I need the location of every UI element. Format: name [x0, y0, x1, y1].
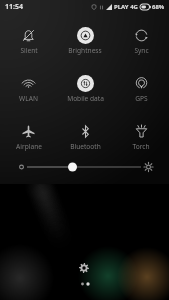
button[interactable]: Bluetooth: [57, 110, 113, 158]
button[interactable]: Airplane: [0, 110, 57, 158]
staticText: 68%: [152, 3, 165, 11]
button[interactable]: Sync: [113, 14, 169, 62]
staticText: Bluetooth: [70, 142, 101, 151]
staticText: Airplane: [16, 142, 42, 151]
button[interactable]: Brightness slider: [0, 158, 169, 184]
button[interactable]: Mobile data: [57, 62, 113, 110]
staticText: Sync: [134, 46, 149, 55]
button[interactable]: Brightness: [57, 14, 113, 62]
staticText: 11:54: [5, 2, 23, 12]
staticText: Mobile data: [67, 94, 104, 103]
button[interactable]: Settings: [76, 260, 92, 276]
staticText: Silent: [20, 46, 38, 55]
button[interactable]: GPS: [113, 62, 169, 110]
staticText: GPS: [135, 94, 148, 103]
button[interactable]: Torch: [113, 110, 169, 158]
staticText: Brightness: [68, 46, 102, 55]
staticText: PLAY 4G: [114, 3, 138, 11]
button[interactable]: WLAN: [0, 62, 57, 110]
button[interactable]: Silent: [0, 14, 57, 62]
staticText: Torch: [132, 142, 150, 151]
staticText: WLAN: [19, 94, 38, 103]
